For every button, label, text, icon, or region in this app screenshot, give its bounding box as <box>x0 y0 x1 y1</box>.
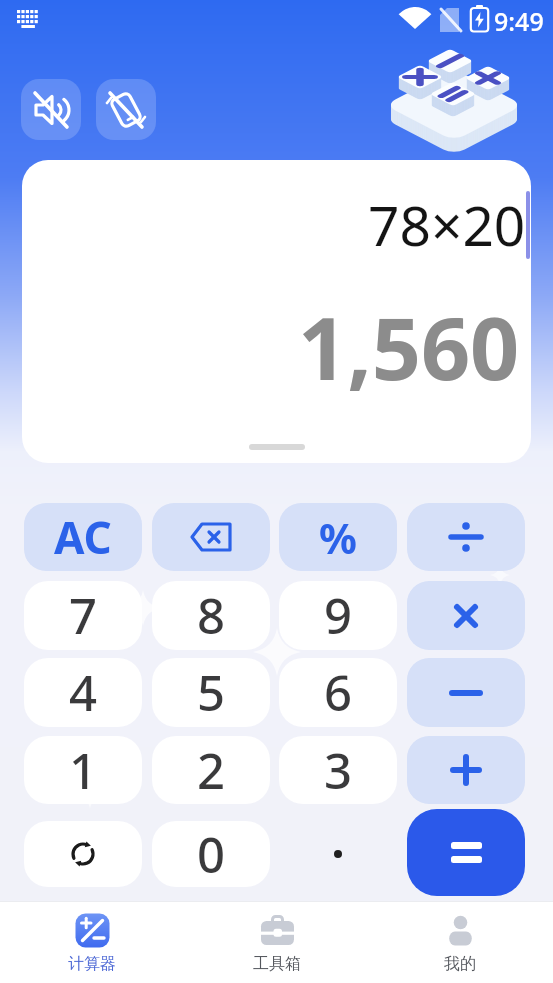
button[interactable]: 6 <box>279 658 397 727</box>
button[interactable]: 4 <box>24 658 142 727</box>
staticText: 计算器 <box>68 954 116 974</box>
button[interactable] <box>407 809 525 896</box>
button[interactable] <box>407 503 525 571</box>
button[interactable] <box>21 79 81 140</box>
button[interactable]: 2 <box>152 736 270 804</box>
button[interactable] <box>407 736 525 804</box>
button[interactable]: % <box>279 503 397 571</box>
staticText: 0 <box>197 821 226 887</box>
button[interactable] <box>24 821 142 887</box>
staticText: 2 <box>197 737 226 804</box>
button[interactable] <box>407 581 525 650</box>
staticText: 6 <box>324 659 353 726</box>
button[interactable] <box>279 821 397 887</box>
staticText: 4 <box>69 659 98 726</box>
staticText: 5 <box>197 659 226 726</box>
staticText: 78×20 <box>368 187 526 262</box>
staticText: 1,560 <box>298 288 520 405</box>
staticText: 9 <box>324 582 353 649</box>
button[interactable]: 9 <box>279 581 397 650</box>
button[interactable]: 工具箱 <box>232 913 322 974</box>
button[interactable]: 计算器 <box>47 913 137 974</box>
staticText: % <box>319 509 357 566</box>
button[interactable] <box>407 658 525 727</box>
button[interactable]: 我的 <box>415 913 505 974</box>
button[interactable]: 7 <box>24 581 142 650</box>
button[interactable]: 0 <box>152 821 270 887</box>
button[interactable] <box>152 503 270 571</box>
staticText: 工具箱 <box>253 954 301 974</box>
staticText: 1 <box>69 737 98 804</box>
button[interactable]: 3 <box>279 736 397 804</box>
button[interactable] <box>96 79 156 140</box>
staticText: 我的 <box>444 954 476 974</box>
staticText: 3 <box>324 737 353 804</box>
staticText: 9:49 <box>494 4 544 38</box>
button[interactable]: AC <box>24 503 142 571</box>
staticText: AC <box>54 507 112 567</box>
staticText: 8 <box>197 582 226 649</box>
button[interactable]: 5 <box>152 658 270 727</box>
button[interactable]: 8 <box>152 581 270 650</box>
button[interactable]: 1 <box>24 736 142 804</box>
staticText: 7 <box>69 582 98 649</box>
